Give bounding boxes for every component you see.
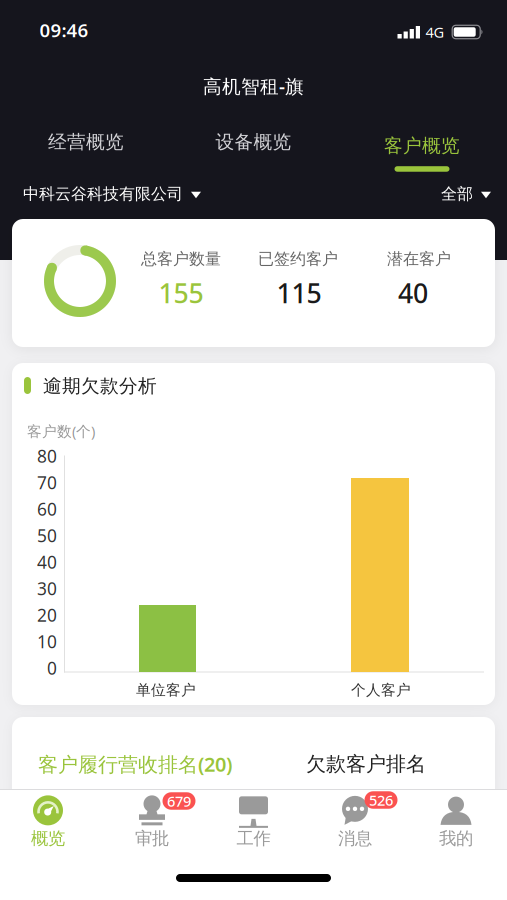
staticText: 09:46 [39,18,88,42]
button[interactable]: 审批 [102,792,202,852]
staticText: 个人客户 [351,681,411,699]
staticText: 10 [37,630,57,653]
staticText: 60 [37,497,57,520]
staticText: 80 [37,444,57,467]
staticText: 经营概览 [48,130,124,153]
button[interactable]: 欠款客户排名 [306,747,426,781]
staticText: 工作 [236,828,270,849]
button[interactable]: 概览 [0,792,98,852]
button[interactable]: 经营概览 [16,122,156,162]
staticText: 30 [37,577,57,600]
staticText: 客户履行营收排名(20) [38,751,232,777]
staticText: 逾期欠款分析 [43,374,157,397]
staticText: 已签约客户 [258,249,338,269]
staticText: 概览 [31,828,65,849]
staticText: 50 [37,524,57,547]
staticText: 消息 [338,828,372,849]
staticText: 审批 [135,828,169,849]
staticText: 20 [37,603,57,626]
staticText: 679 [167,791,191,811]
button[interactable]: 客户概览 [352,127,492,179]
staticText: 单位客户 [136,681,196,699]
staticText: 115 [276,275,321,311]
staticText: 潜在客户 [387,249,451,269]
staticText: 客户数(个) [27,421,95,441]
staticText: 4G [425,22,444,42]
button[interactable]: 客户履行营收排名(20) [38,747,232,781]
staticText: 高机智租-旗 [203,74,304,98]
staticText: 0 [47,656,57,679]
button[interactable]: 我的 [406,792,506,852]
staticText: 我的 [439,828,473,849]
staticText: 70 [37,471,57,494]
staticText: 155 [158,275,203,311]
staticText: 设备概览 [215,130,291,153]
button[interactable]: 设备概览 [183,122,323,162]
staticText: 客户概览 [384,134,460,157]
staticText: 总客户数量 [141,249,221,269]
staticText: 全部 [441,184,473,204]
button[interactable]: 中科云谷科技有限公司 [23,179,201,209]
staticText: 40 [37,550,57,573]
staticText: 欠款客户排名 [306,752,426,776]
button[interactable]: 消息 [305,792,405,852]
staticText: 526 [369,790,393,810]
button[interactable]: 工作 [203,792,303,852]
button[interactable]: 全部 [441,179,491,209]
staticText: 中科云谷科技有限公司 [23,184,183,204]
staticText: 40 [398,275,428,311]
